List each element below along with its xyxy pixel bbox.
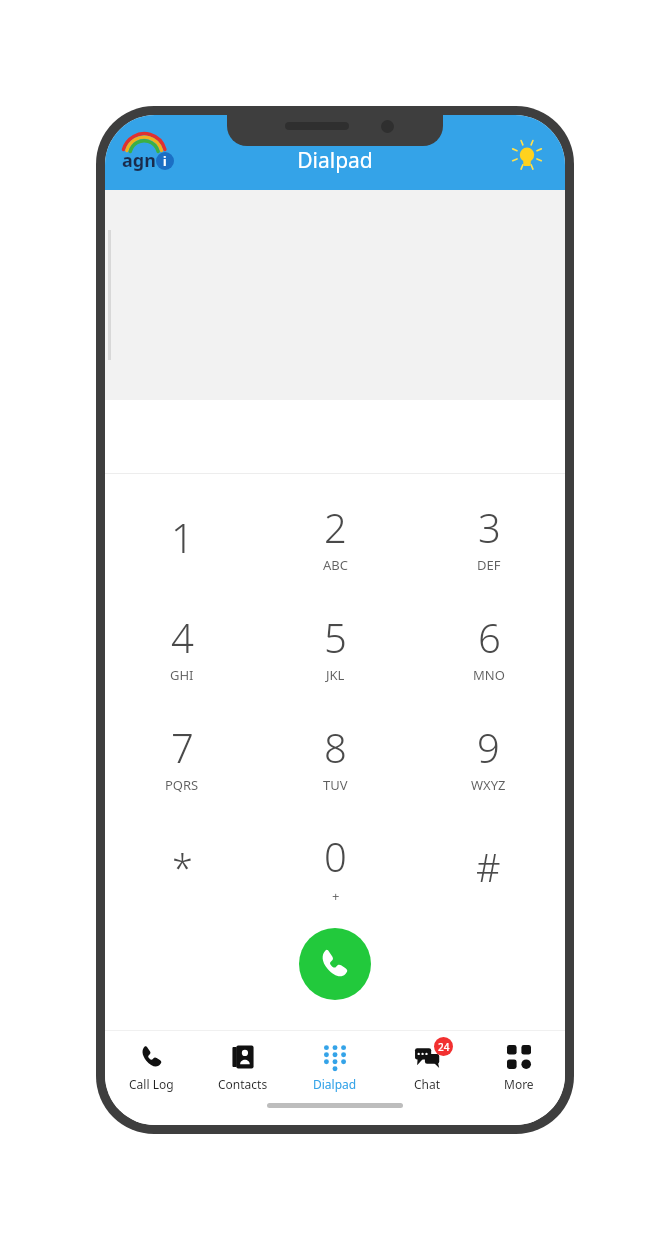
button[interactable]: 2	[259, 482, 412, 592]
staticText: 9	[477, 720, 500, 774]
button[interactable]: 8	[259, 702, 412, 812]
button[interactable]: Call Log	[105, 1031, 197, 1103]
staticText: 5	[324, 610, 347, 664]
button[interactable]: 1	[105, 482, 259, 592]
staticText: TUV	[323, 776, 348, 794]
button[interactable]: agni logo	[119, 131, 179, 175]
staticText: 0	[324, 829, 347, 883]
staticText: Contacts	[218, 1076, 268, 1092]
staticText: 8	[324, 720, 347, 774]
button[interactable]: Dialpad	[289, 1031, 381, 1103]
staticText: +	[332, 887, 340, 905]
staticText: Dialpad	[313, 1076, 357, 1092]
button[interactable]: *	[105, 812, 259, 922]
staticText: 4	[171, 610, 194, 664]
staticText: PQRS	[165, 776, 199, 794]
button[interactable]: Call	[299, 928, 371, 1000]
staticText: MNO	[473, 666, 505, 684]
staticText: #	[476, 841, 501, 893]
button[interactable]: Flashlight	[505, 131, 549, 175]
button[interactable]: 0	[259, 812, 412, 922]
button[interactable]: 4	[105, 592, 259, 702]
staticText: JKL	[326, 666, 345, 684]
staticText: DEF	[477, 556, 501, 574]
staticText: 24	[438, 1040, 450, 1054]
button[interactable]: 6	[412, 592, 565, 702]
staticText: 3	[478, 500, 501, 554]
button[interactable]: Contacts	[197, 1031, 289, 1103]
staticText: ABC	[323, 556, 348, 574]
staticText: Chat	[414, 1076, 441, 1092]
button[interactable]: 24	[381, 1031, 473, 1103]
staticText: 1	[171, 510, 194, 564]
button[interactable]: More	[473, 1031, 565, 1103]
staticText: WXYZ	[471, 776, 506, 794]
staticText: *	[172, 841, 193, 893]
button[interactable]: 3	[412, 482, 565, 592]
staticText: GHI	[170, 666, 194, 684]
button[interactable]: 9	[412, 702, 565, 812]
staticText: 2	[324, 500, 347, 554]
staticText: Call Log	[129, 1076, 174, 1092]
staticText: 7	[171, 720, 194, 774]
staticText: 6	[478, 610, 501, 664]
button[interactable]: #	[412, 812, 565, 922]
staticText: agn	[122, 148, 156, 173]
staticText: More	[504, 1076, 534, 1092]
button[interactable]: 7	[105, 702, 259, 812]
staticText: Dialpad	[297, 146, 373, 175]
staticText: i	[163, 153, 167, 169]
button[interactable]: 5	[259, 592, 412, 702]
